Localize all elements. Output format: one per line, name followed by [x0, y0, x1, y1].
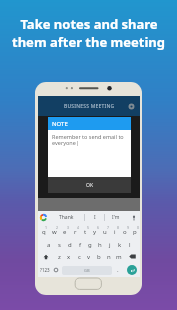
staticText: 6 [97, 225, 100, 230]
button[interactable]: u [100, 224, 110, 237]
staticText: h [98, 241, 102, 249]
staticText: Remember to send email to everyone| [52, 133, 127, 147]
button[interactable]: j [105, 237, 115, 250]
staticText: . [117, 266, 119, 274]
staticText: 9 [127, 225, 130, 230]
staticText: 0 [137, 225, 140, 230]
staticText: GB [84, 268, 90, 273]
staticText: 2 [56, 225, 59, 230]
button[interactable]: l [125, 237, 135, 250]
staticText: x [67, 253, 71, 261]
staticText: BUSINESS MEETING [64, 103, 115, 110]
staticText: k [118, 241, 122, 249]
button[interactable]: I'm [105, 211, 127, 224]
button[interactable]: a [43, 237, 54, 250]
button[interactable]: d [65, 237, 75, 250]
button[interactable]: o [120, 224, 130, 237]
staticText: I'm [112, 214, 120, 221]
staticText: n [107, 253, 111, 261]
staticText: l [129, 241, 131, 249]
button[interactable]: i [110, 224, 120, 237]
staticText: NOTE [52, 120, 68, 128]
button[interactable]: Backspace [124, 250, 140, 263]
staticText: r [74, 228, 77, 236]
button[interactable]: c [74, 250, 84, 263]
button[interactable]: z [54, 250, 64, 263]
button[interactable]: I [85, 211, 104, 224]
button[interactable]: k [115, 237, 125, 250]
staticText: 4 [77, 225, 80, 230]
staticText: q [42, 228, 46, 236]
staticText: z [58, 253, 61, 261]
button[interactable]: Enter [127, 265, 137, 275]
button[interactable]: b [94, 250, 104, 263]
staticText: I [94, 214, 96, 221]
staticText: v [87, 253, 91, 261]
button[interactable]: ?123 [38, 263, 51, 277]
staticText: OK [86, 182, 94, 189]
staticText: e [63, 228, 67, 236]
staticText: d [68, 241, 72, 249]
staticText: Take notes and share [20, 15, 158, 33]
button[interactable]: m [114, 250, 124, 263]
button[interactable]: Emoji [51, 263, 61, 277]
staticText: 7 [107, 225, 110, 230]
button[interactable]: OK [48, 177, 131, 193]
staticText: 5 [87, 225, 90, 230]
button[interactable]: e [60, 224, 70, 237]
button[interactable]: v [84, 250, 94, 263]
staticText: f [79, 241, 82, 249]
staticText: 8 [117, 225, 120, 230]
button[interactable]: Thank [49, 211, 84, 224]
staticText: a [47, 241, 51, 249]
staticText: u [103, 228, 107, 236]
button[interactable]: t [80, 224, 90, 237]
staticText: t [84, 228, 87, 236]
staticText: Thank [59, 214, 74, 221]
staticText: p [133, 228, 137, 236]
button[interactable]: w [49, 224, 60, 237]
staticText: 3 [67, 225, 70, 230]
button[interactable]: y [90, 224, 100, 237]
staticText: 1 [45, 225, 48, 230]
staticText: b [97, 253, 101, 261]
staticText: w [52, 228, 57, 236]
button[interactable]: GB [62, 266, 112, 275]
staticText: c [78, 253, 81, 261]
staticText: them after the meeting [12, 33, 165, 51]
staticText: j [109, 241, 111, 249]
button[interactable]: n [104, 250, 114, 263]
button[interactable]: x [64, 250, 74, 263]
staticText: i [114, 228, 116, 236]
button[interactable]: f [75, 237, 85, 250]
button[interactable]: s [54, 237, 65, 250]
staticText: y [93, 228, 97, 236]
button[interactable]: Settings [126, 101, 136, 111]
button[interactable]: g [85, 237, 95, 250]
staticText: m [116, 253, 122, 261]
staticText: s [58, 241, 61, 249]
button[interactable]: p [130, 224, 140, 237]
button[interactable]: . [113, 263, 123, 277]
staticText: g [88, 241, 92, 249]
button[interactable]: Shift [38, 250, 54, 263]
button[interactable]: q [38, 224, 49, 237]
staticText: ?123 [40, 267, 50, 273]
button[interactable]: r [70, 224, 80, 237]
staticText: o [123, 228, 127, 236]
button[interactable]: h [95, 237, 105, 250]
